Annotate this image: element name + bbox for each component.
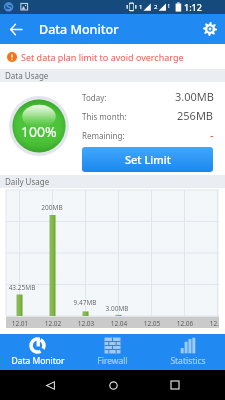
button[interactable]: Settings [195,14,225,44]
staticText: This month: [82,111,127,122]
staticText: Statistics [170,355,206,367]
staticText: Set Limit [125,152,171,167]
staticText: Data Monitor [11,355,65,367]
staticText: 43.25MB [0,283,46,292]
button[interactable]: Back [2,14,30,44]
button[interactable]: Firewall [75,334,150,370]
staticText: Data Usage [5,70,49,81]
staticText: ! [168,2,170,10]
staticText: 3.00MB [175,89,214,103]
button[interactable]: Back [38,373,62,397]
staticText: 256MB [177,108,214,122]
staticText: 12.04 [103,319,135,328]
staticText: 12.07 [202,319,219,328]
staticText: Data Monitor [39,21,119,38]
button[interactable]: Recents [163,373,187,397]
staticText: 12.03 [70,319,102,328]
staticText: 12.01 [6,319,36,328]
staticText: 200MB [28,203,76,212]
button[interactable]: Set Limit [82,147,213,172]
staticText: - [210,127,214,141]
staticText: 1:12 [184,1,202,13]
staticText: 9.47MB [61,298,109,307]
button[interactable]: Set data plan limit to avoid overcharge [0,44,225,69]
staticText: 3.00MB [93,304,141,313]
staticText: Remaining: [82,130,125,141]
button[interactable]: Home [101,373,125,397]
staticText: 2 [154,3,158,11]
staticText: Set data plan limit to avoid overcharge [21,51,184,63]
staticText: Daily Usage [5,176,50,187]
staticText: Today: [82,92,107,103]
staticText: Firewall [97,355,128,367]
button[interactable]: Statistics [150,334,225,370]
staticText: 12.02 [37,319,69,328]
staticText: 12.06 [169,319,201,328]
staticText: 12.05 [136,319,168,328]
staticText: 100% [21,122,57,141]
staticText: 1 [139,3,143,11]
button[interactable]: Data Monitor [0,334,75,370]
